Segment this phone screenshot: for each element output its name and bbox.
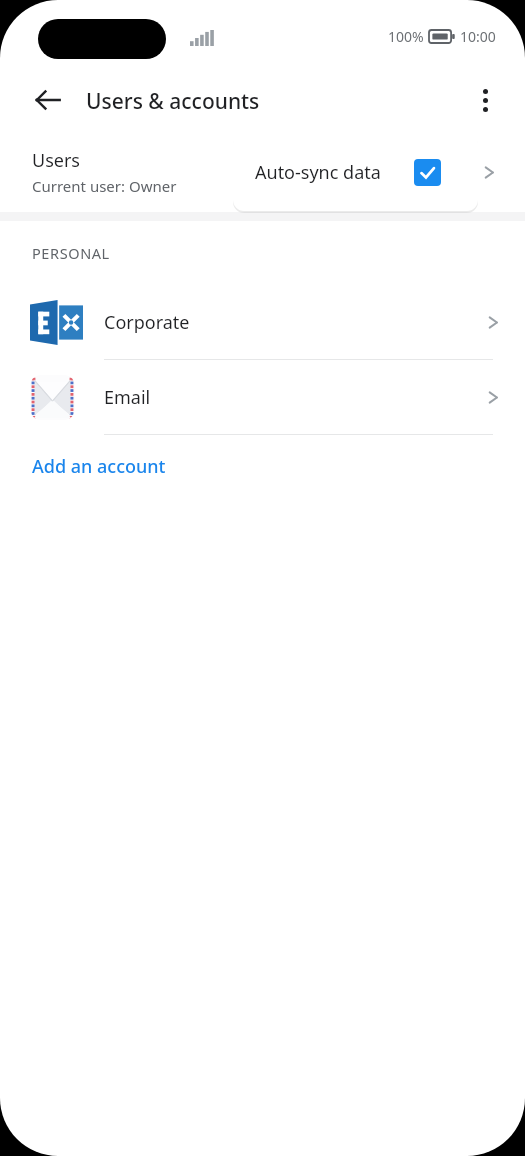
button[interactable]: Email — [0, 360, 525, 434]
staticText: Users & accounts — [86, 87, 260, 116]
button[interactable]: Back — [22, 74, 74, 126]
staticText: Email — [104, 385, 151, 410]
button[interactable]: Auto-sync data checkbox — [414, 159, 441, 186]
staticText: 100% — [388, 27, 424, 46]
staticText: Users — [32, 148, 80, 173]
staticText: Add an account — [32, 454, 166, 479]
staticText: Corporate — [104, 310, 190, 335]
staticText: Current user: Owner — [32, 176, 177, 196]
button[interactable]: Corporate — [0, 285, 525, 359]
button[interactable]: Add an account — [0, 435, 525, 497]
staticText: 10:00 — [460, 27, 496, 46]
button[interactable]: Auto-sync data — [233, 133, 478, 211]
button[interactable]: More options — [461, 76, 509, 124]
staticText: PERSONAL — [32, 243, 110, 263]
button[interactable]: Users — [0, 132, 525, 212]
staticText: Auto-sync data — [255, 160, 381, 185]
